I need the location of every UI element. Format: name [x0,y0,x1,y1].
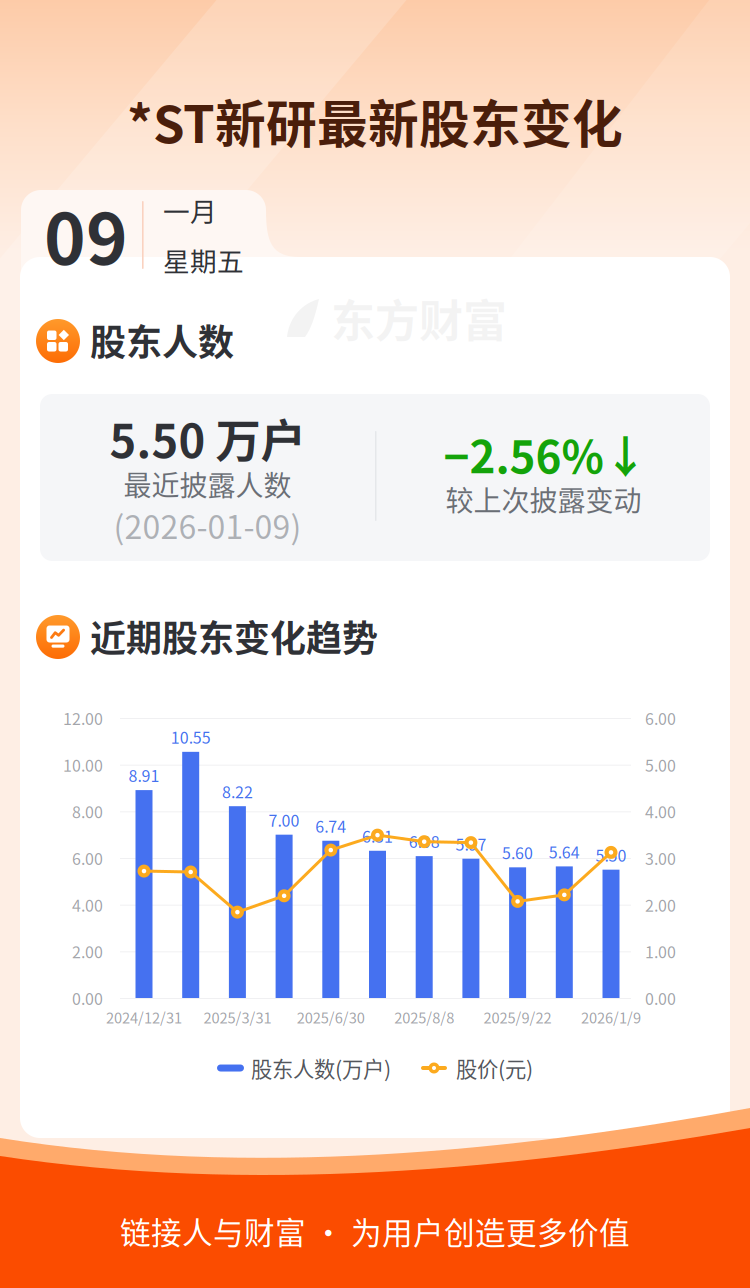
staticText: 0.00 [72,986,103,1010]
staticText: 8.22 [222,780,253,803]
staticText: 6.00 [72,846,103,870]
staticText: 星期五 [163,240,244,279]
staticText: 2025/9/22 [484,1006,552,1028]
staticText: 较上次披露变动 [445,479,641,519]
staticText: 10.55 [171,725,211,748]
staticText: 最近披露人数 [123,464,291,504]
staticText: 5.97 [455,832,486,855]
staticText: 6.08 [409,829,440,853]
staticText: 0.00 [645,986,676,1010]
staticText: 2.00 [645,893,676,916]
staticText: 12.00 [63,706,103,730]
staticText: 2025/8/8 [394,1006,454,1028]
staticText: 6.74 [315,814,346,837]
staticText: 5.50 万户 [109,405,305,471]
staticText: 东方财富 [331,286,507,350]
staticText: 5.50 [595,843,626,866]
staticText: 5.64 [549,840,580,863]
staticText: 3.00 [645,846,676,870]
staticText: 4.00 [645,800,676,823]
staticText: 10.00 [63,753,103,776]
staticText: 近期股东变化趋势 [90,610,378,662]
staticText: 09 [44,183,128,285]
staticText: 2025/6/30 [297,1006,365,1028]
staticText: 8.91 [128,763,159,787]
staticText: 8.00 [72,800,103,823]
staticText: 股价(元) [456,1053,533,1083]
staticText: 5.00 [645,753,676,776]
staticText: 链接人与财富 · 为用户创造更多价值 [120,1209,630,1253]
staticText: 7.00 [269,808,300,831]
staticText: 5.60 [502,841,533,864]
staticText: 6.31 [362,824,393,847]
staticText: *ST新研最新股东变化 [127,84,623,158]
staticText: 一月 [163,191,217,229]
staticText: (2026-01-09) [113,502,301,548]
staticText: 2025/3/31 [203,1006,271,1028]
staticText: −2.56%↓ [443,422,647,486]
staticText: 2026/1/9 [581,1006,641,1028]
staticText: 2024/12/31 [106,1006,182,1028]
staticText: 股东人数(万户) [251,1053,391,1083]
staticText: 2.00 [72,940,103,963]
staticText: 4.00 [72,893,103,916]
staticText: 股东人数 [90,314,234,366]
staticText: 6.00 [645,706,676,730]
staticText: 1.00 [645,940,676,963]
